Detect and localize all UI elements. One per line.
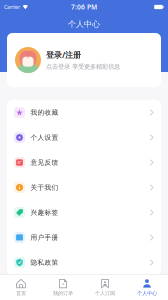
staticText: 我的订单 [53, 290, 73, 297]
button[interactable]: 个人中心 [126, 275, 168, 300]
staticText: 兴趣标签 [30, 208, 58, 217]
button[interactable]: 隐私政策 [7, 250, 161, 275]
staticText: Carrier [4, 3, 20, 11]
staticText: 用户手册 [30, 233, 58, 242]
button[interactable]: 兴趣标签 [7, 200, 161, 225]
staticText: 7:06 PM [71, 3, 97, 11]
button[interactable]: 首页 [0, 275, 42, 300]
staticText: 我的收藏 [30, 108, 58, 117]
staticText: 首页 [16, 290, 26, 297]
button[interactable]: 我的收藏 [7, 100, 161, 125]
staticText: 个人中心 [137, 290, 157, 297]
button[interactable]: 关于我们 [7, 175, 161, 200]
staticText: 关于我们 [30, 183, 58, 192]
staticText: 个人设置 [30, 133, 58, 142]
staticText: 点击登录 享受更多精彩信息 [46, 63, 120, 70]
staticText: 隐私政策 [30, 258, 58, 267]
staticText: 个人订阅 [95, 290, 115, 297]
button[interactable]: 个人设置 [7, 125, 161, 150]
button[interactable]: 登录/注册 [7, 33, 161, 87]
button[interactable]: 个人订阅 [84, 275, 126, 300]
button[interactable]: 用户手册 [7, 225, 161, 250]
staticText: 登录/注册 [46, 49, 81, 60]
button[interactable]: 意见反馈 [7, 150, 161, 175]
button[interactable]: 我的订单 [42, 275, 84, 300]
staticText: 意见反馈 [30, 158, 58, 167]
staticText: 个人中心 [68, 19, 100, 29]
